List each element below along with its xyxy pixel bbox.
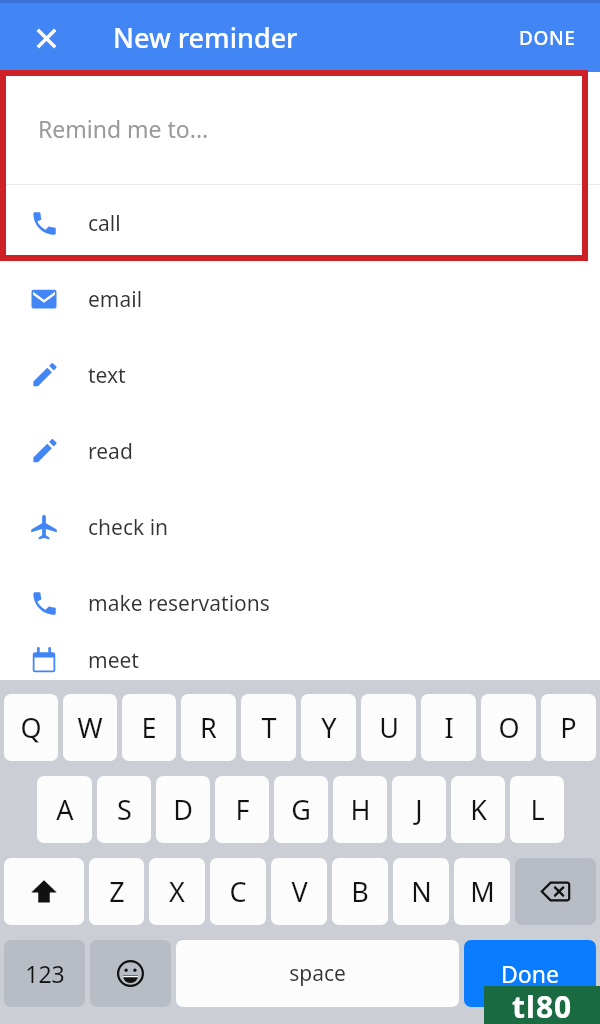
- staticText: E: [141, 709, 157, 746]
- staticText: G: [291, 791, 311, 828]
- staticText: R: [200, 709, 217, 746]
- staticText: H: [350, 791, 371, 828]
- button[interactable]: N: [393, 858, 449, 925]
- staticText: make reservations: [88, 589, 270, 618]
- button[interactable]: B: [332, 858, 388, 925]
- staticText: tl80: [512, 986, 573, 1024]
- staticText: C: [229, 873, 247, 910]
- button[interactable]: check in: [0, 489, 600, 565]
- staticText: N: [411, 873, 432, 910]
- staticText: O: [498, 709, 520, 746]
- staticText: W: [77, 709, 103, 746]
- button[interactable]: Emoji: [90, 940, 171, 1007]
- button[interactable]: J: [392, 776, 446, 843]
- staticText: text: [88, 361, 126, 390]
- staticText: S: [117, 791, 132, 828]
- staticText: space: [289, 959, 346, 988]
- button[interactable]: Y: [301, 694, 356, 761]
- button[interactable]: H: [333, 776, 387, 843]
- staticText: F: [235, 791, 250, 828]
- staticText: M: [470, 873, 495, 910]
- button[interactable]: text: [0, 337, 600, 413]
- button[interactable]: G: [274, 776, 328, 843]
- staticText: Done: [501, 958, 559, 989]
- button[interactable]: call: [0, 185, 600, 261]
- staticText: Z: [109, 873, 125, 910]
- button[interactable]: A: [37, 776, 92, 843]
- staticText: call: [88, 209, 121, 238]
- button[interactable]: F: [215, 776, 269, 843]
- staticText: check in: [88, 513, 169, 542]
- staticText: email: [88, 285, 143, 314]
- staticText: read: [88, 437, 133, 466]
- button[interactable]: Z: [89, 858, 144, 925]
- staticText: 123: [25, 958, 65, 989]
- staticText: T: [261, 709, 277, 746]
- button[interactable]: I: [421, 694, 476, 761]
- button[interactable]: R: [181, 694, 236, 761]
- button[interactable]: C: [210, 858, 266, 925]
- staticText: DONE: [519, 25, 576, 51]
- staticText: New reminder: [113, 19, 298, 56]
- button[interactable]: T: [241, 694, 296, 761]
- staticText: V: [291, 873, 308, 910]
- button[interactable]: L: [510, 776, 564, 843]
- staticText: Q: [20, 709, 42, 746]
- button[interactable]: S: [97, 776, 151, 843]
- button[interactable]: email: [0, 261, 600, 337]
- staticText: J: [415, 791, 423, 828]
- button[interactable]: Backspace: [515, 858, 596, 925]
- button[interactable]: W: [63, 694, 117, 761]
- button[interactable]: M: [454, 858, 510, 925]
- button[interactable]: meet: [0, 641, 600, 680]
- staticText: Y: [321, 709, 337, 746]
- button[interactable]: Close: [22, 14, 70, 62]
- button[interactable]: X: [149, 858, 205, 925]
- button[interactable]: read: [0, 413, 600, 489]
- button[interactable]: U: [361, 694, 416, 761]
- button[interactable]: Shift: [4, 858, 84, 925]
- staticText: D: [173, 791, 193, 828]
- button[interactable]: E: [122, 694, 176, 761]
- staticText: I: [444, 709, 454, 746]
- button[interactable]: O: [481, 694, 536, 761]
- button[interactable]: Remind me to...: [0, 72, 600, 184]
- button[interactable]: DONE: [509, 13, 586, 63]
- staticText: B: [351, 873, 369, 910]
- button[interactable]: D: [156, 776, 210, 843]
- staticText: K: [470, 791, 487, 828]
- staticText: L: [530, 791, 545, 828]
- staticText: A: [56, 791, 74, 828]
- staticText: X: [169, 873, 185, 910]
- button[interactable]: 123: [4, 940, 85, 1007]
- button[interactable]: K: [451, 776, 505, 843]
- staticText: P: [560, 709, 577, 746]
- staticText: meet: [88, 646, 139, 675]
- button[interactable]: space: [176, 940, 459, 1007]
- button[interactable]: P: [541, 694, 596, 761]
- button[interactable]: Done: [464, 940, 596, 1007]
- button[interactable]: V: [271, 858, 327, 925]
- staticText: Remind me to...: [38, 113, 209, 144]
- button[interactable]: Q: [4, 694, 58, 761]
- button[interactable]: make reservations: [0, 565, 600, 641]
- staticText: U: [379, 709, 399, 746]
